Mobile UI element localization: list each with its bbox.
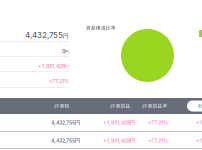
staticText: +1,931,428円 bbox=[103, 119, 135, 126]
staticText: +1,931,428 bbox=[38, 63, 65, 69]
staticText: 表示順 bbox=[197, 103, 202, 109]
staticText: +1,9 bbox=[196, 137, 202, 144]
staticText: 0 bbox=[62, 48, 65, 54]
staticText: +1,9 bbox=[196, 119, 202, 126]
staticText: 4,432,755円 bbox=[51, 137, 80, 144]
staticText: 円 bbox=[65, 64, 69, 69]
staticText: 評価損益率 bbox=[142, 103, 167, 109]
staticText: 4,432,755円 bbox=[51, 119, 80, 126]
staticText: 円 bbox=[63, 32, 69, 40]
staticText: 4,432,755 bbox=[25, 30, 63, 40]
staticText: 評価額 bbox=[54, 103, 69, 109]
staticText: +1,931,428円 bbox=[103, 137, 135, 144]
staticText: 評価損益 bbox=[110, 103, 130, 109]
button[interactable]: 表示順 bbox=[187, 100, 202, 111]
staticText: 円 bbox=[65, 49, 69, 54]
staticText: +77.21% bbox=[49, 78, 69, 84]
staticText: 資産構成比率 bbox=[86, 25, 116, 31]
staticText: +77.21% bbox=[148, 137, 168, 144]
staticText: +77.21% bbox=[148, 119, 168, 126]
